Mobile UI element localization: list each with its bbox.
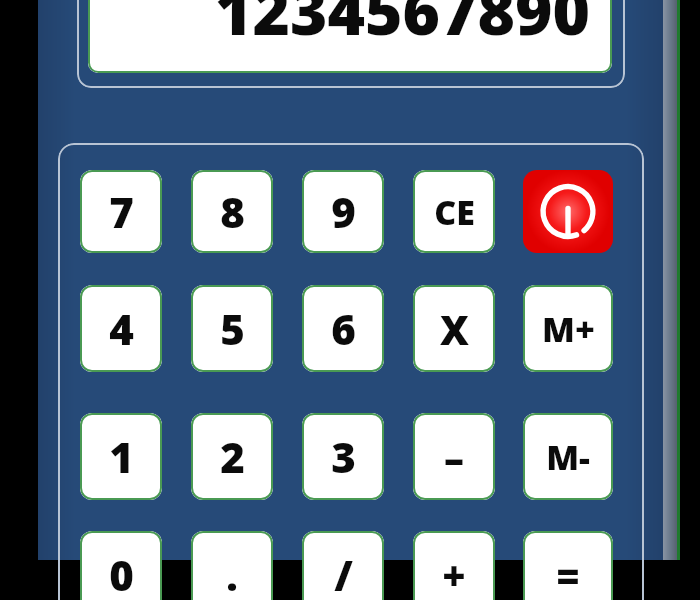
staticText: 0 xyxy=(109,546,134,600)
button[interactable]: . xyxy=(191,531,273,600)
button[interactable]: 2 xyxy=(191,413,273,500)
staticText: . xyxy=(226,548,238,600)
staticText: 5 xyxy=(220,300,245,357)
button[interactable]: 5 xyxy=(191,285,273,372)
button[interactable]: 1234567890 xyxy=(88,0,612,73)
staticText: = xyxy=(556,548,580,600)
button[interactable]: + xyxy=(413,531,495,600)
button[interactable]: 1 xyxy=(80,413,162,500)
button[interactable]: X xyxy=(413,285,495,372)
staticText: M- xyxy=(546,434,590,480)
staticText: 6 xyxy=(331,300,356,357)
button[interactable]: 3 xyxy=(302,413,384,500)
button[interactable]: M- xyxy=(523,413,613,500)
staticText: 1234567890 xyxy=(214,0,590,54)
staticText: + xyxy=(442,548,466,600)
staticText: CE xyxy=(434,189,475,235)
staticText: 3 xyxy=(331,428,356,485)
staticText: – xyxy=(444,430,464,484)
button[interactable]: 8 xyxy=(191,170,273,253)
button[interactable]: 9 xyxy=(302,170,384,253)
button[interactable]: 6 xyxy=(302,285,384,372)
button[interactable]: = xyxy=(523,531,613,600)
staticText: M+ xyxy=(542,306,595,352)
staticText: 7 xyxy=(109,183,134,240)
button[interactable]: CE xyxy=(413,170,495,253)
button[interactable]: – xyxy=(413,413,495,500)
staticText: 4 xyxy=(109,300,134,357)
staticText: X xyxy=(440,302,469,356)
staticText: 9 xyxy=(331,183,356,240)
button[interactable]: 7 xyxy=(80,170,162,253)
staticText: 2 xyxy=(220,428,245,485)
staticText: 8 xyxy=(220,183,245,240)
button[interactable]: M+ xyxy=(523,285,613,372)
button[interactable]: 4 xyxy=(80,285,162,372)
staticText: 1 xyxy=(109,428,134,485)
button[interactable]: / xyxy=(302,531,384,600)
button[interactable]: Power xyxy=(523,170,613,253)
staticText: / xyxy=(334,546,353,600)
button[interactable]: 0 xyxy=(80,531,162,600)
